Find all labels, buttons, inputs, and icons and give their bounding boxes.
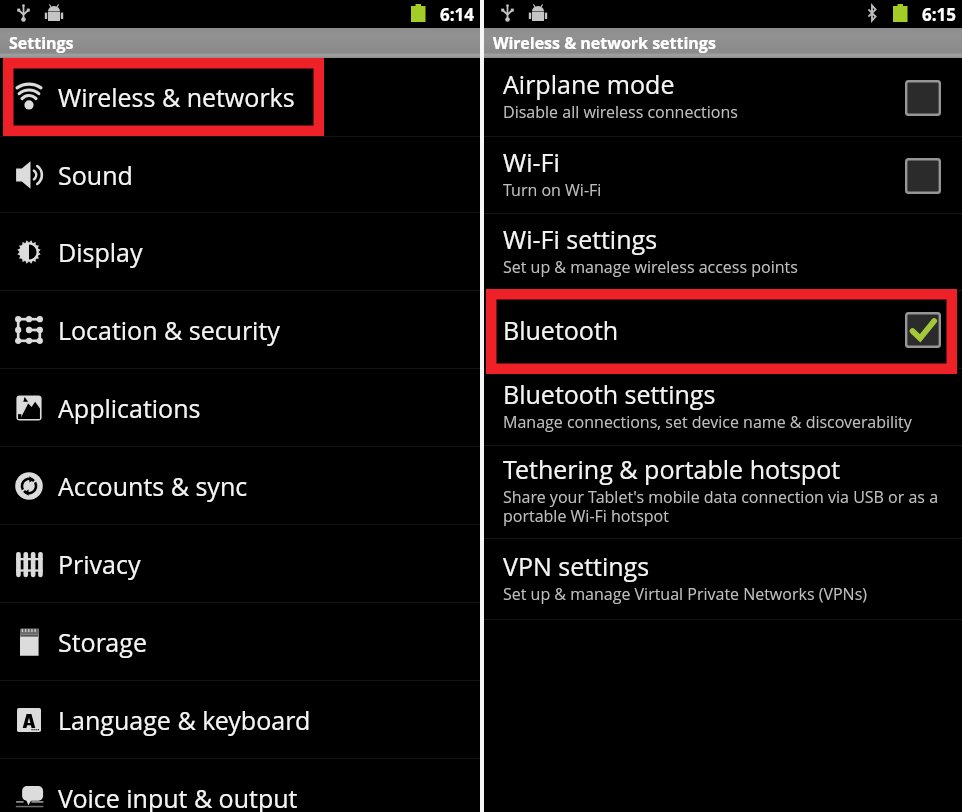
button[interactable]: Bluetooth xyxy=(484,291,962,369)
button[interactable]: Voice input & output xyxy=(0,759,480,812)
button[interactable]: VPN settings xyxy=(484,539,962,620)
button[interactable]: Sound xyxy=(0,137,480,213)
staticText: Airplane mode xyxy=(503,67,675,101)
button[interactable]: Disabled xyxy=(905,80,941,116)
staticText: Language & keyboard xyxy=(58,703,311,737)
button[interactable]: Accounts & sync xyxy=(0,447,480,525)
staticText: Privacy xyxy=(58,547,141,581)
staticText: Sound xyxy=(58,158,133,192)
staticText: Disable all wireless connections xyxy=(503,101,738,123)
staticText: Bluetooth xyxy=(503,313,619,347)
staticText: Accounts & sync xyxy=(58,469,248,503)
button[interactable]: Privacy xyxy=(0,525,480,603)
button[interactable]: Location & security xyxy=(0,291,480,369)
staticText: 6:15 xyxy=(922,3,956,26)
staticText: Bluetooth settings xyxy=(503,377,716,411)
button[interactable]: Wi-Fi settings xyxy=(484,214,962,291)
staticText: Display xyxy=(58,235,143,269)
staticText: Voice input & output xyxy=(58,781,298,812)
staticText: Share your Tablet's mobile data connecti… xyxy=(503,486,939,527)
staticText: Turn on Wi-Fi xyxy=(503,179,602,201)
button[interactable]: Display xyxy=(0,213,480,291)
staticText: Settings xyxy=(9,32,74,54)
staticText: Tethering & portable hotspot xyxy=(503,452,841,486)
staticText: 6:14 xyxy=(440,3,474,26)
staticText: VPN settings xyxy=(503,549,650,583)
staticText: Applications xyxy=(58,391,201,425)
button[interactable]: Storage xyxy=(0,603,480,681)
button[interactable]: Wireless & networks xyxy=(0,58,480,137)
staticText: Wi-Fi xyxy=(503,145,560,179)
button[interactable]: Applications xyxy=(0,369,480,447)
staticText: Set up & manage wireless access points xyxy=(503,256,798,278)
staticText: Location & security xyxy=(58,313,280,347)
staticText: Manage connections, set device name & di… xyxy=(503,411,912,433)
button[interactable]: Disabled xyxy=(905,158,941,194)
button[interactable]: Tethering & portable hotspot xyxy=(484,446,962,539)
button[interactable]: Enabled xyxy=(905,312,941,348)
staticText: Set up & manage Virtual Private Networks… xyxy=(503,583,867,605)
staticText: Storage xyxy=(58,625,147,659)
button[interactable]: Wi-Fi xyxy=(484,137,962,214)
staticText: Wi-Fi settings xyxy=(503,222,658,256)
staticText: Wireless & network settings xyxy=(493,32,716,54)
button[interactable]: Airplane mode xyxy=(484,58,962,137)
staticText: Wireless & networks xyxy=(58,80,295,114)
button[interactable]: Language & keyboard xyxy=(0,681,480,759)
button[interactable]: Bluetooth settings xyxy=(484,369,962,446)
